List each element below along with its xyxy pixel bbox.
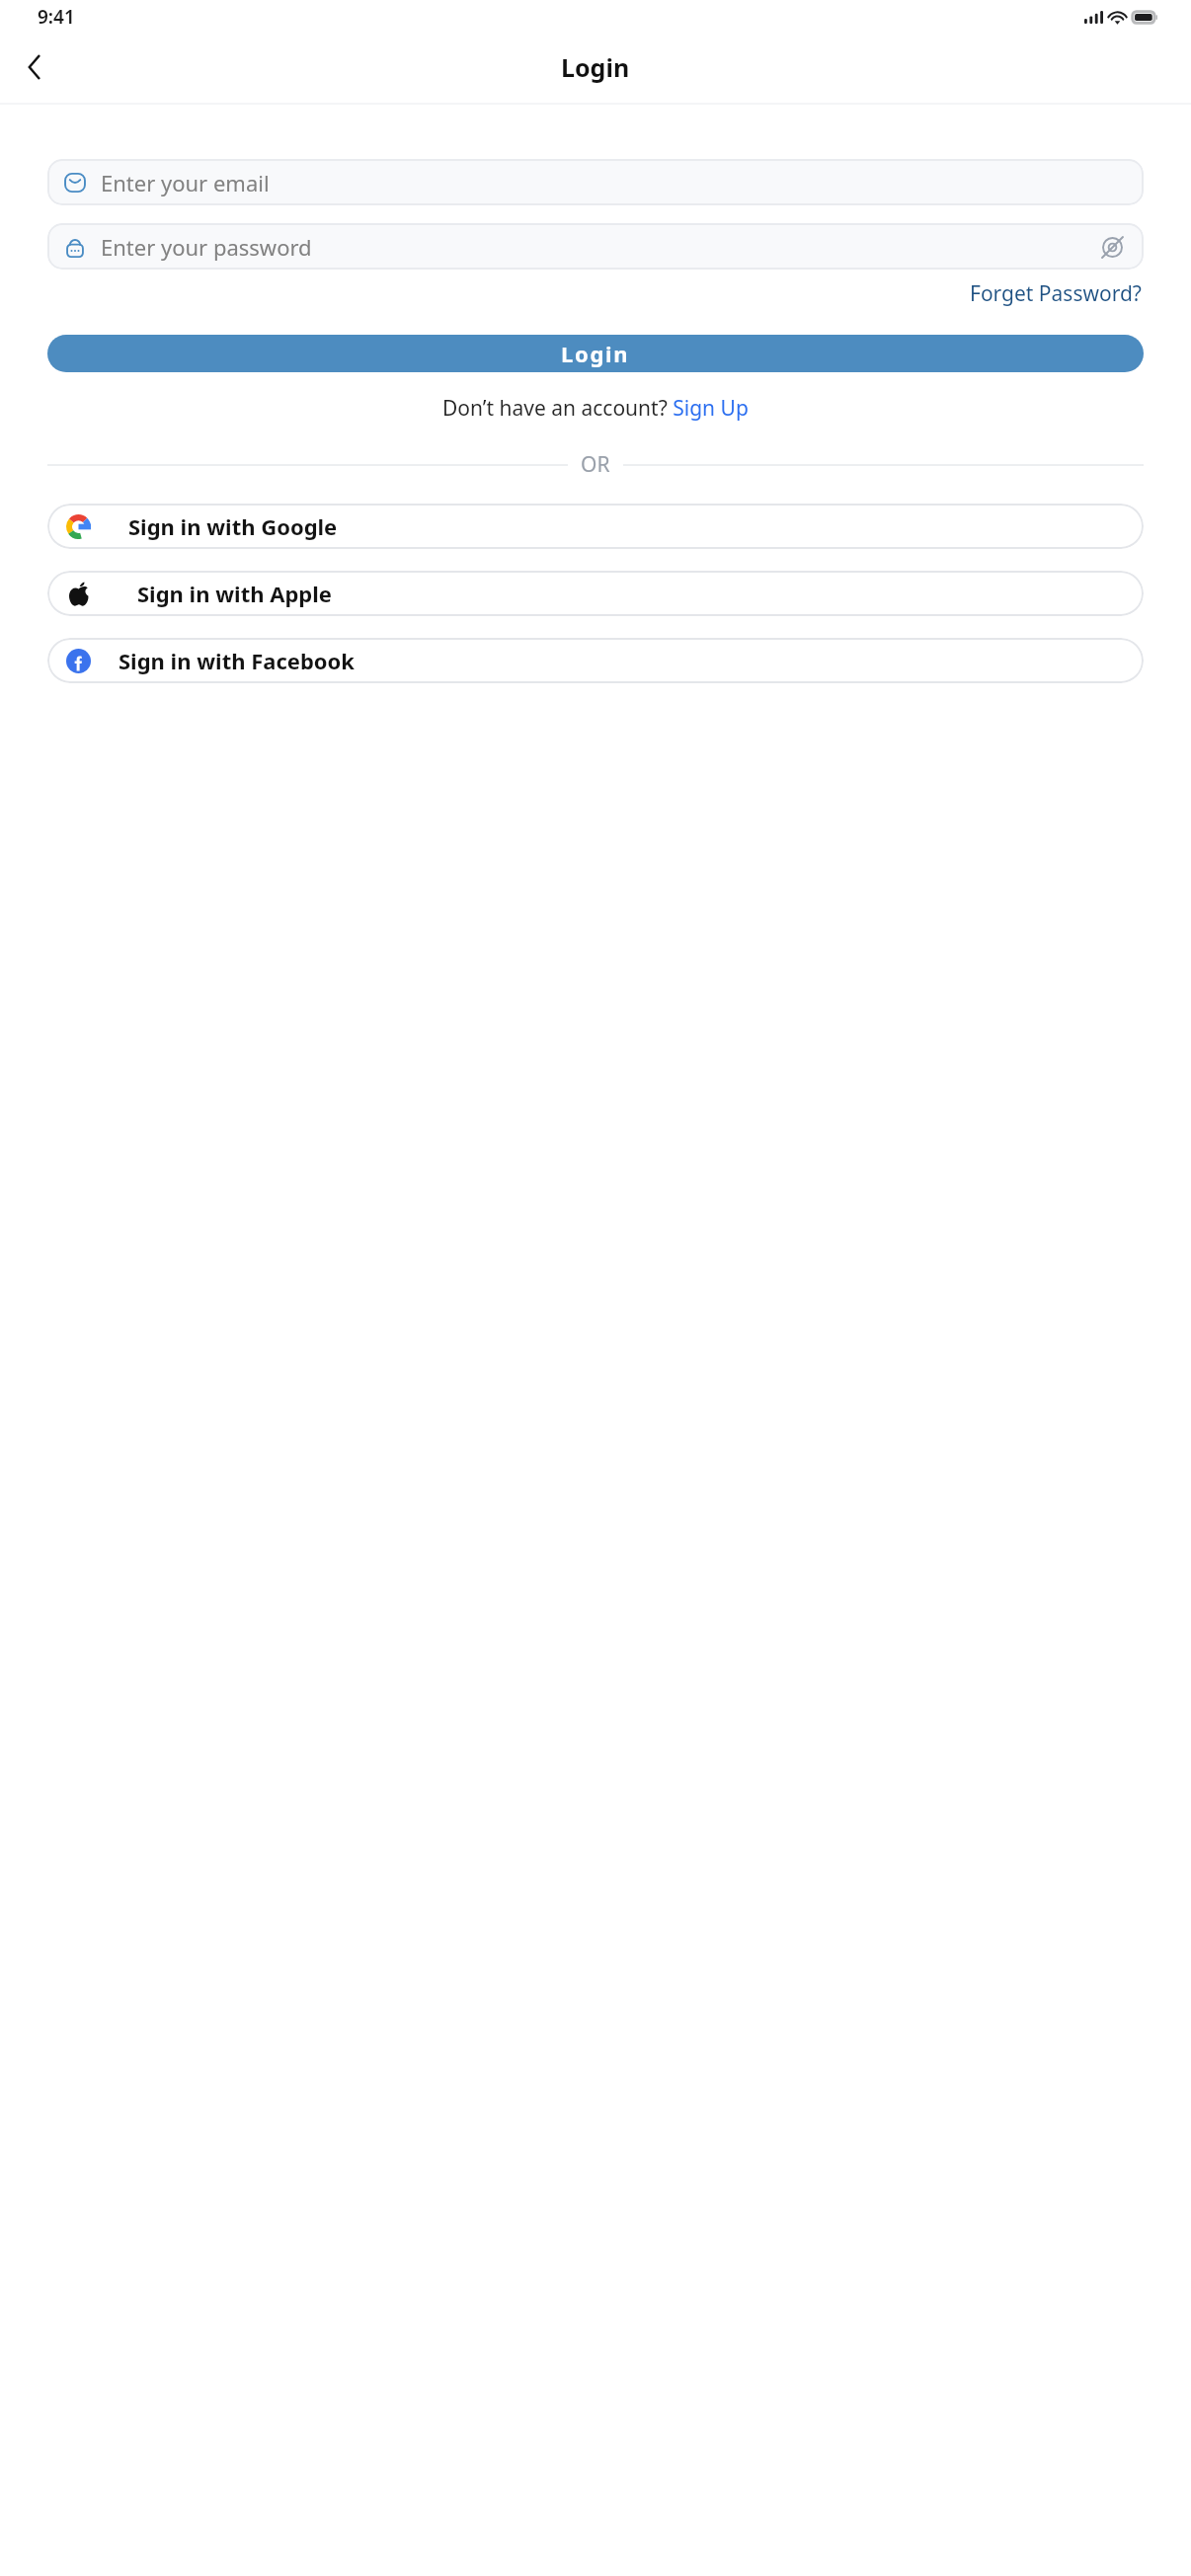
button[interactable]: Enter your email bbox=[47, 159, 1144, 205]
button[interactable]: Show password bbox=[1096, 231, 1128, 263]
staticText: Enter your email bbox=[101, 168, 1128, 197]
button[interactable]: Sign in with Google bbox=[47, 504, 1144, 549]
button[interactable]: Don’t have an account? Sign Up bbox=[438, 391, 753, 426]
staticText: Don’t have an account? Sign Up bbox=[442, 394, 749, 423]
staticText: Forget Password? bbox=[970, 279, 1142, 308]
staticText: OR bbox=[581, 450, 610, 479]
button[interactable]: Enter your password bbox=[47, 223, 1144, 270]
staticText: Sign in with Apple bbox=[137, 579, 332, 608]
button[interactable]: Sign in with Apple bbox=[47, 571, 1144, 616]
button[interactable]: Back bbox=[10, 43, 57, 91]
staticText: Enter your password bbox=[101, 232, 1096, 262]
button[interactable]: Login bbox=[47, 335, 1144, 372]
staticText: Sign in with Facebook bbox=[119, 646, 355, 675]
staticText: Sign in with Google bbox=[128, 511, 338, 541]
button[interactable]: Sign in with Facebook bbox=[47, 638, 1144, 683]
staticText: Login bbox=[561, 50, 630, 84]
staticText: Login bbox=[561, 339, 630, 368]
staticText: 9:41 bbox=[38, 4, 75, 30]
button[interactable]: Forget Password? bbox=[968, 276, 1144, 311]
